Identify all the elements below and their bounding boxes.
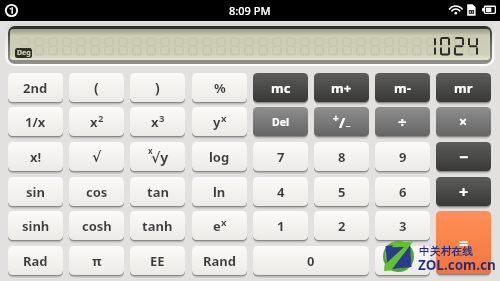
staticText: _	[346, 114, 351, 128]
button[interactable]: sinh	[8, 211, 63, 240]
button[interactable]: sin	[8, 177, 63, 206]
button[interactable]: x	[130, 107, 185, 136]
button[interactable]: Rad	[8, 246, 63, 275]
button[interactable]: −	[436, 142, 491, 171]
staticText: e	[213, 217, 221, 235]
button[interactable]: cosh	[69, 211, 124, 240]
button[interactable]: log	[192, 142, 247, 171]
button[interactable]: 2	[314, 211, 369, 240]
button[interactable]: %	[192, 73, 247, 102]
button[interactable]: x	[69, 107, 124, 136]
button[interactable]: (	[69, 73, 124, 102]
staticText: =	[459, 232, 469, 254]
button[interactable]: 9	[375, 142, 430, 171]
button[interactable]	[375, 246, 430, 275]
staticText: 2	[98, 112, 104, 125]
button[interactable]: Del	[253, 107, 308, 136]
staticText: cos	[86, 183, 108, 201]
staticText: x	[221, 216, 227, 229]
button[interactable]: Battery level	[481, 2, 498, 19]
button[interactable]: Wi-Fi signal	[446, 2, 466, 19]
staticText: 5	[338, 183, 346, 201]
staticText: Rad	[23, 252, 48, 270]
button[interactable]: mc	[253, 73, 308, 102]
button[interactable]: ÷	[375, 107, 430, 136]
staticText: tanh	[142, 217, 173, 235]
staticText: Rand	[203, 252, 236, 270]
button[interactable]: m-	[375, 73, 430, 102]
staticText: 8:09 PM	[229, 3, 271, 18]
staticText: √y	[151, 148, 169, 167]
staticText: 中关村在线	[419, 245, 473, 258]
staticText: 2nd	[23, 79, 48, 97]
staticText: EE	[150, 252, 165, 270]
staticText: π	[92, 252, 102, 270]
staticText: mc	[271, 79, 291, 97]
staticText: 8	[338, 148, 346, 166]
button[interactable]: EE	[130, 246, 185, 275]
staticText: +	[459, 181, 469, 203]
staticText: m+	[331, 79, 352, 97]
button[interactable]: m+	[314, 73, 369, 102]
button[interactable]: 7	[253, 142, 308, 171]
staticText: sinh	[22, 217, 50, 235]
staticText: 6	[399, 183, 407, 201]
button[interactable]: Deg	[15, 48, 32, 58]
button[interactable]: x!	[8, 142, 63, 171]
button[interactable]: 1 notification	[4, 3, 20, 19]
staticText: 0	[307, 252, 315, 270]
staticText: 7	[277, 148, 285, 166]
staticText: log	[209, 148, 230, 166]
button[interactable]: 8	[314, 142, 369, 171]
button[interactable]: 5	[314, 177, 369, 206]
button[interactable]: tanh	[130, 211, 185, 240]
staticText: )	[155, 78, 160, 97]
staticText: 2	[338, 217, 346, 235]
button[interactable]: π	[69, 246, 124, 275]
staticText: mr	[454, 79, 473, 97]
staticText: x	[151, 113, 159, 131]
button[interactable]: y	[192, 107, 247, 136]
staticText: 3	[399, 217, 407, 235]
staticText: 3	[159, 112, 165, 125]
staticText: 4	[277, 183, 285, 201]
button[interactable]: √	[69, 142, 124, 171]
staticText: %	[214, 79, 226, 97]
button[interactable]: tan	[130, 177, 185, 206]
staticText: ÷	[398, 112, 407, 132]
button[interactable]: SIM card	[466, 2, 477, 19]
button[interactable]: 0	[253, 246, 369, 275]
button[interactable]: Rand	[192, 246, 247, 275]
staticText: ZOL.com.cn	[418, 256, 496, 274]
button[interactable]: ×	[436, 107, 491, 136]
button[interactable]: +	[314, 107, 369, 136]
staticText: x	[148, 145, 153, 156]
staticText: x	[221, 112, 227, 125]
staticText: ×	[459, 112, 468, 131]
button[interactable]: 1/x	[8, 107, 63, 136]
staticText: y	[213, 113, 221, 131]
button[interactable]: mr	[436, 73, 491, 102]
staticText: −	[459, 146, 469, 168]
button[interactable]: 1	[253, 211, 308, 240]
staticText: /	[339, 112, 346, 132]
staticText: √	[92, 149, 102, 165]
button[interactable]: )	[130, 73, 185, 102]
staticText: ln	[213, 183, 226, 201]
staticText: m-	[394, 79, 411, 97]
staticText: Del	[272, 115, 290, 129]
button[interactable]: 4	[253, 177, 308, 206]
button[interactable]: ln	[192, 177, 247, 206]
staticText: x!	[30, 148, 42, 166]
staticText: sin	[26, 183, 45, 201]
button[interactable]: √y	[130, 142, 185, 171]
button[interactable]: e	[192, 211, 247, 240]
button[interactable]: cos	[69, 177, 124, 206]
button[interactable]: 6	[375, 177, 430, 206]
button[interactable]: 3	[375, 211, 430, 240]
button[interactable]: +	[436, 177, 491, 206]
staticText: (	[94, 78, 99, 97]
button[interactable]: =	[436, 211, 491, 274]
staticText: 9	[399, 148, 407, 166]
button[interactable]: 2nd	[8, 73, 63, 102]
